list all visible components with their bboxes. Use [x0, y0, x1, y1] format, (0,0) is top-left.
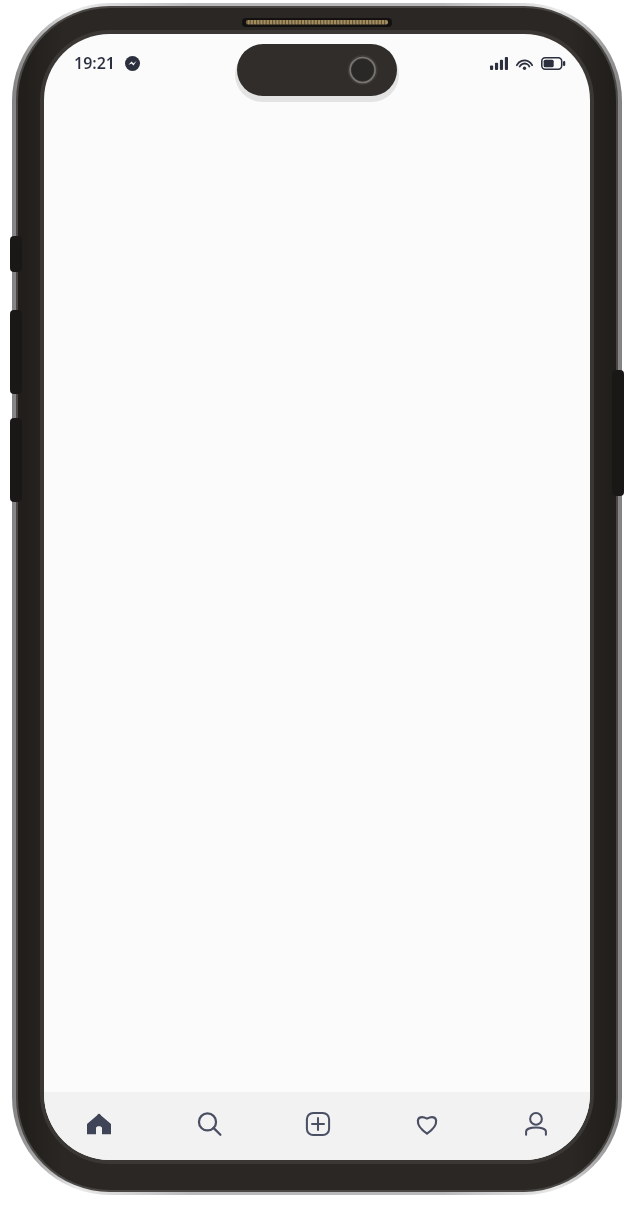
button[interactable]: Search	[154, 1092, 263, 1160]
button[interactable]: Home	[44, 1092, 154, 1160]
button[interactable]: Profile	[481, 1092, 590, 1160]
button[interactable]: Activity	[372, 1092, 481, 1160]
staticText: 19:21	[74, 52, 116, 74]
button[interactable]: Create	[263, 1092, 372, 1160]
